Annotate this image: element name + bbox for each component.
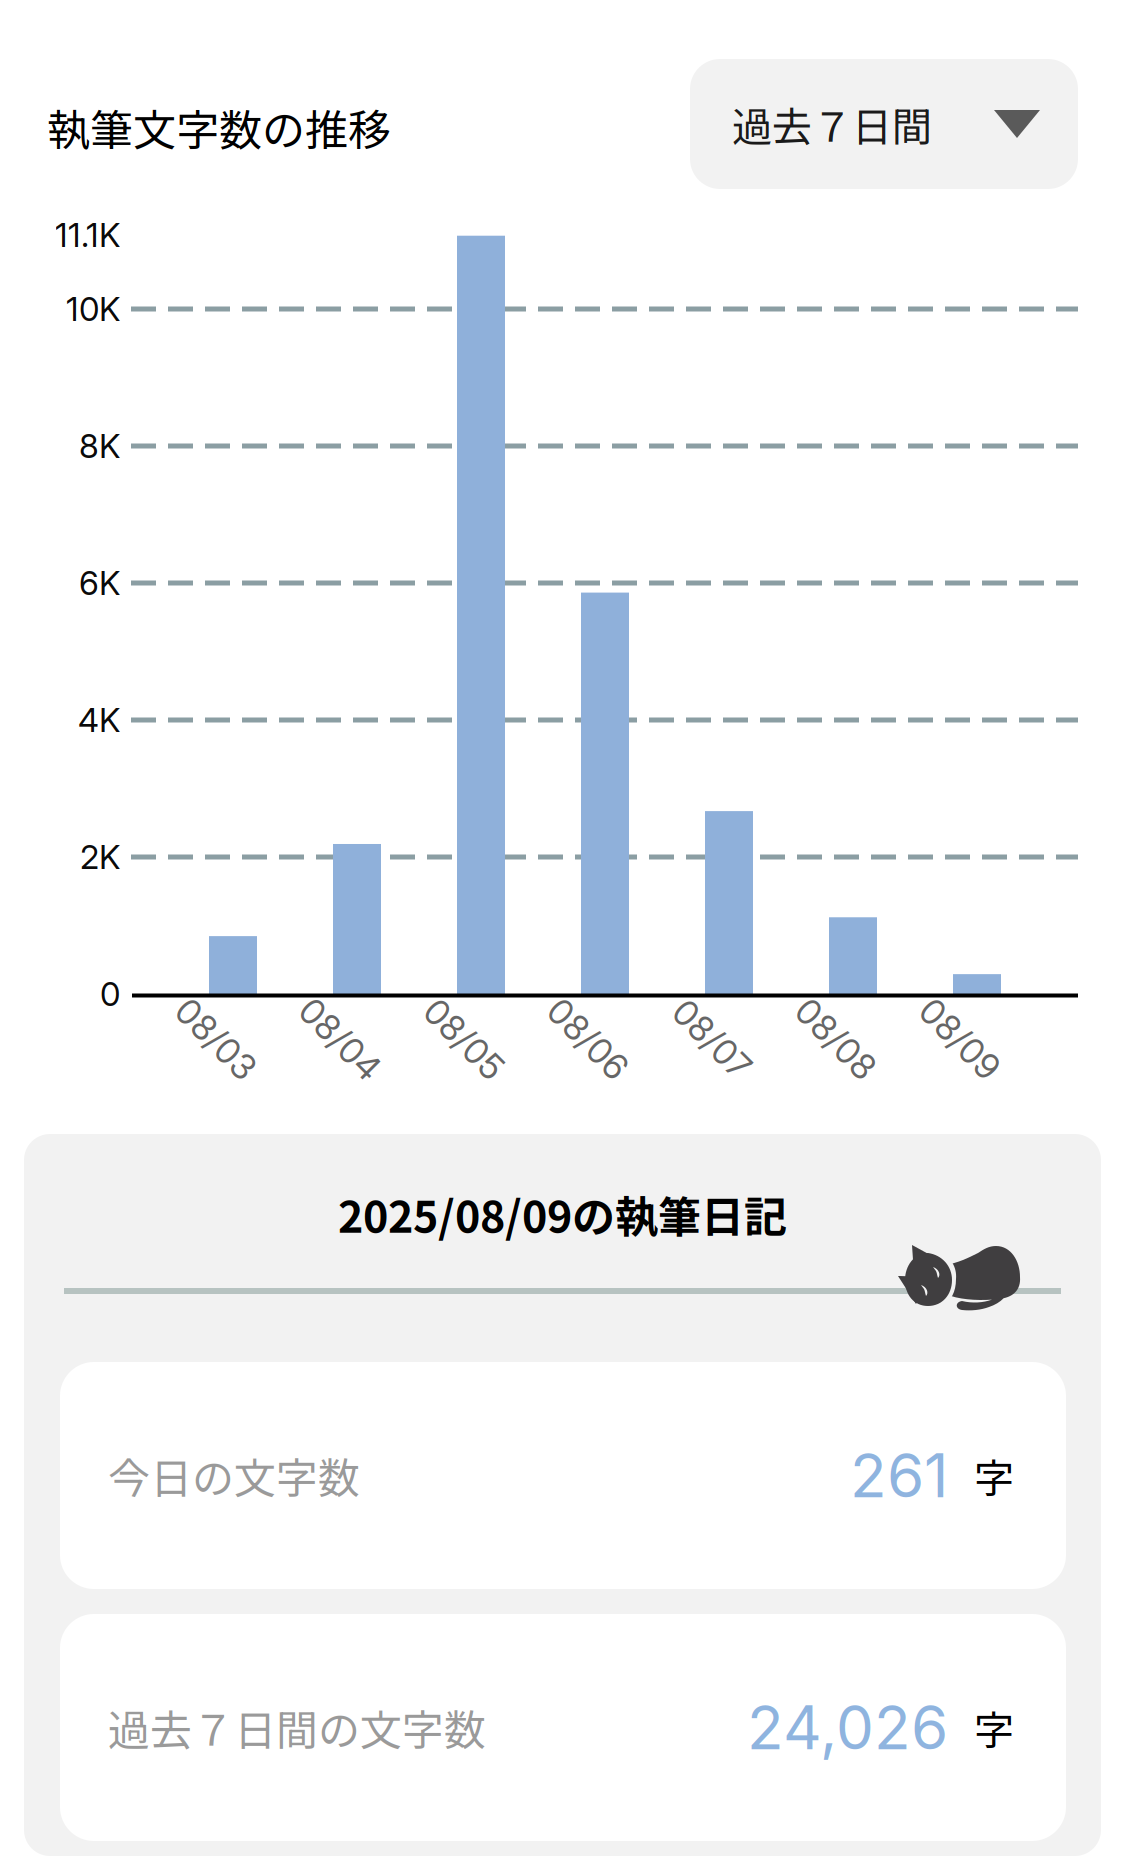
staticText: 24,026	[747, 1691, 948, 1764]
staticText: 08/05	[415, 1018, 512, 1060]
staticText: 2K	[80, 837, 120, 877]
staticText: 6K	[79, 563, 120, 603]
staticText: 11.1K	[55, 215, 120, 255]
staticText: 字	[974, 1446, 1014, 1504]
staticText: 08/06	[539, 1018, 637, 1060]
staticText: 執筆文字数の推移	[47, 96, 391, 158]
staticText: 過去７日間の文字数	[108, 1697, 486, 1758]
staticText: 08/04	[290, 1018, 389, 1060]
staticText: 2025/08/09の執筆日記	[338, 1183, 787, 1245]
staticText: 08/08	[787, 1018, 885, 1060]
button[interactable]: 今日の文字数	[60, 1362, 1066, 1589]
staticText: 8K	[79, 426, 120, 466]
button[interactable]: 過去７日間	[690, 59, 1078, 189]
staticText: 08/09	[911, 1018, 1009, 1060]
staticText: 10K	[66, 289, 120, 329]
staticText: 08/07	[664, 1018, 759, 1060]
staticText: 0	[100, 974, 120, 1014]
staticText: 過去７日間	[732, 95, 932, 153]
staticText: 261	[850, 1439, 948, 1512]
staticText: 字	[974, 1698, 1014, 1756]
button[interactable]: 過去７日間の文字数	[60, 1614, 1066, 1841]
staticText: 08/03	[167, 1018, 265, 1060]
staticText: 4K	[78, 700, 120, 740]
staticText: 今日の文字数	[108, 1445, 360, 1506]
